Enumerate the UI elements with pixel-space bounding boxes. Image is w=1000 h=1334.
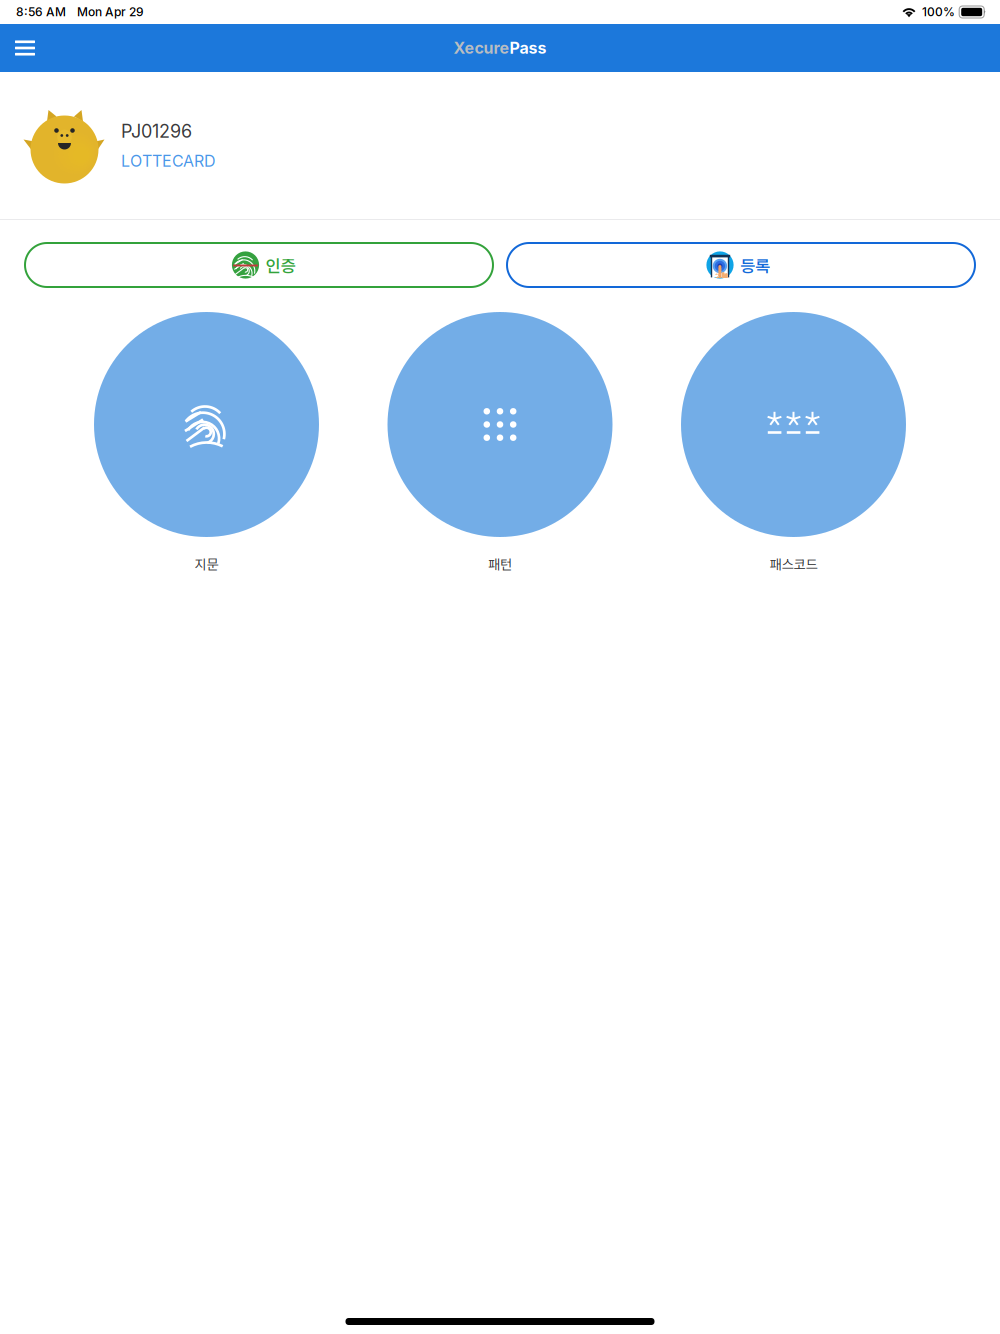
button[interactable]: Menu — [0, 24, 50, 72]
staticText: Pass — [509, 38, 546, 58]
button[interactable]: 등록 — [506, 242, 976, 288]
button[interactable]: 패스코드 — [681, 312, 906, 573]
button[interactable]: 패턴 — [387, 312, 612, 573]
staticText: 8:56 AM — [16, 5, 66, 19]
staticText: PJ01296 — [121, 120, 192, 142]
staticText: 100% — [922, 5, 955, 19]
staticText: Mon Apr 29 — [77, 5, 144, 19]
staticText: 등록 — [740, 253, 770, 277]
button[interactable]: 지문 — [94, 312, 319, 573]
staticText: 지문 — [194, 554, 218, 573]
button[interactable]: 인증 — [24, 242, 494, 288]
staticText: Xecure — [453, 38, 509, 58]
staticText: LOTTECARD — [121, 151, 216, 171]
staticText: 패턴 — [488, 554, 512, 573]
staticText: 패스코드 — [769, 554, 817, 573]
staticText: 인증 — [265, 253, 295, 277]
